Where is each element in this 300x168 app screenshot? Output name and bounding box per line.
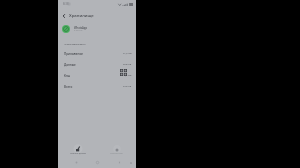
staticText: Приложение (64, 52, 83, 56)
staticText: Данные (64, 63, 76, 67)
staticText: WhatsApp (74, 26, 88, 30)
staticText: 41,6 МБ (123, 52, 132, 55)
button[interactable]: Home (93, 158, 101, 166)
button[interactable]: Очистить данные (58, 141, 97, 157)
button[interactable]: Приложение (58, 48, 136, 59)
staticText: 2.22.5.76 (74, 29, 83, 32)
button[interactable]: Back (59, 11, 68, 20)
staticText: 1,2 МБ (124, 74, 132, 77)
button[interactable]: Очистить кэш (97, 141, 136, 157)
staticText: 342 МБ (123, 85, 132, 88)
button[interactable]: Back (72, 158, 80, 166)
button[interactable]: Recents (115, 158, 123, 166)
staticText: 8:38 (63, 2, 69, 6)
button[interactable]: Кэш (58, 70, 136, 81)
staticText: Очистить данные (70, 152, 86, 155)
button[interactable]: Всего (58, 81, 136, 92)
button[interactable]: Данные (58, 59, 136, 70)
staticText: Использовано места (64, 43, 86, 46)
staticText: Всего (64, 85, 73, 89)
staticText: Хранилище (69, 12, 94, 18)
staticText: Кэш (64, 74, 71, 78)
staticText: 299 МБ (123, 63, 132, 66)
staticText: Очистить кэш (110, 152, 123, 155)
